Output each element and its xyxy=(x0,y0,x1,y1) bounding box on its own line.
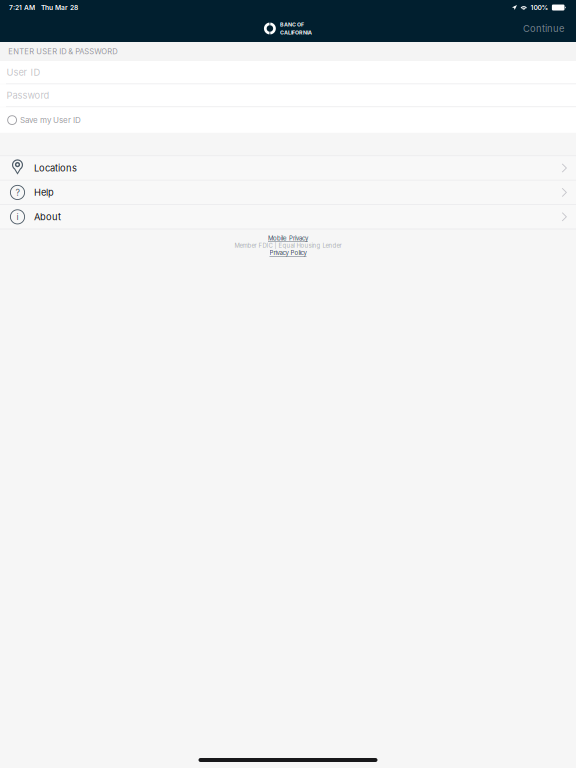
button[interactable]: Save my User ID xyxy=(0,107,576,133)
staticText: i xyxy=(16,211,18,222)
staticText: Mobile Privacy xyxy=(268,234,308,242)
staticText: Password xyxy=(6,90,49,101)
staticText: BANC OF xyxy=(280,21,304,28)
button[interactable]: Locations xyxy=(0,156,576,180)
staticText: ENTER USER ID & PASSWORD xyxy=(8,47,117,56)
staticText: Privacy Policy xyxy=(269,249,306,256)
staticText: Save my User ID xyxy=(20,115,81,125)
staticText: 7:21 AM xyxy=(9,3,35,12)
staticText: ? xyxy=(15,187,19,198)
button[interactable]: ? xyxy=(0,181,576,204)
staticText: Continue xyxy=(523,23,564,34)
staticText: 100% xyxy=(530,3,548,12)
staticText: Help xyxy=(34,187,54,198)
staticText: Locations xyxy=(34,162,77,174)
button[interactable]: Mobile Privacy xyxy=(268,234,308,242)
staticText: User ID xyxy=(6,67,40,78)
button[interactable]: Continue xyxy=(511,16,576,41)
staticText: CALIFORNIA xyxy=(280,29,312,36)
button[interactable]: Privacy Policy xyxy=(269,249,306,256)
button[interactable]: i xyxy=(0,205,576,229)
staticText: Thu Mar 28 xyxy=(41,3,78,12)
staticText: Member FDIC | Equal Housing Lender xyxy=(234,242,341,249)
staticText: About xyxy=(34,211,61,222)
